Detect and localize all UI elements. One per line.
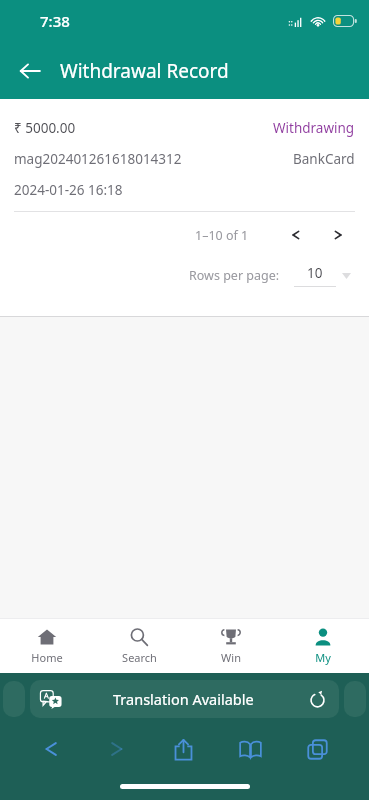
button[interactable]: Translation Available bbox=[30, 680, 339, 718]
button[interactable]: Forward bbox=[84, 725, 150, 773]
button[interactable]: Search bbox=[93, 619, 185, 673]
staticText: BankCard bbox=[293, 150, 355, 168]
button[interactable]: Refresh translation bbox=[305, 687, 329, 711]
staticText: Home bbox=[31, 650, 63, 665]
button[interactable]: ₹ 5000.00 bbox=[0, 99, 369, 203]
button[interactable]: Bookmarks bbox=[217, 725, 284, 773]
staticText: Translation Available bbox=[113, 689, 254, 709]
button[interactable]: Share bbox=[150, 725, 217, 773]
staticText: 7:38 bbox=[40, 11, 70, 31]
button[interactable]: Win bbox=[185, 619, 277, 673]
button[interactable]: Rows per page selector bbox=[294, 264, 351, 287]
button[interactable]: Tabs bbox=[284, 725, 351, 773]
staticText: Win bbox=[221, 650, 241, 665]
button[interactable]: Next page bbox=[321, 218, 355, 252]
staticText: My bbox=[315, 650, 331, 665]
staticText: mag202401261618014312 bbox=[14, 150, 182, 168]
staticText: Withdrawing bbox=[273, 119, 355, 137]
staticText: 2024-01-26 16:18 bbox=[14, 181, 123, 199]
button[interactable]: Back bbox=[8, 49, 52, 93]
staticText: Withdrawal Record bbox=[60, 58, 229, 84]
button[interactable]: My bbox=[277, 619, 369, 673]
button[interactable]: Back bbox=[18, 725, 84, 773]
button[interactable]: Previous page bbox=[279, 218, 313, 252]
button[interactable]: Home bbox=[0, 619, 93, 673]
staticText: 1–10 of 1 bbox=[195, 227, 249, 244]
staticText: Search bbox=[122, 650, 157, 665]
staticText: ₹ 5000.00 bbox=[14, 119, 76, 137]
staticText: Rows per page: bbox=[189, 267, 280, 284]
staticText: 10 bbox=[307, 264, 323, 282]
